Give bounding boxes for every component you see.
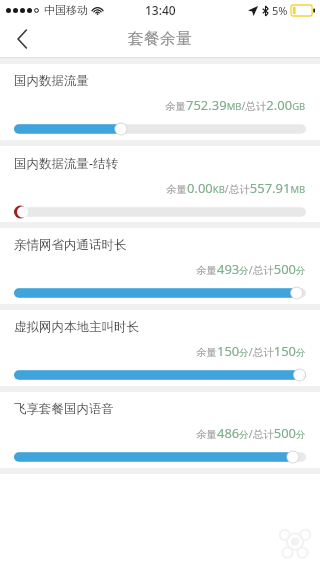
button[interactable]: 虚拟网内本地主叫时长	[0, 310, 320, 386]
button[interactable]: 亲情网省内通话时长	[0, 228, 320, 304]
staticText: 余量493分/总计500分	[196, 260, 306, 278]
staticText: 虚拟网内本地主叫时长	[14, 319, 139, 335]
staticText: 国内数据流量-结转	[14, 155, 119, 172]
staticText: 余量752.39MB/总计2.00GB	[165, 96, 306, 114]
staticText: 套餐余量	[128, 29, 192, 49]
staticText: 余量150分/总计150分	[196, 342, 306, 360]
button[interactable]: 国内数据流量-结转	[0, 146, 320, 222]
staticText: 13:40	[145, 2, 176, 18]
staticText: 亲情网省内通话时长	[14, 237, 127, 253]
staticText: 余量486分/总计500分	[196, 424, 306, 442]
staticText: 余量0.00KB/总计557.91MB	[166, 179, 306, 197]
staticText: 中国移动	[44, 3, 88, 17]
staticText: 飞享套餐国内语音	[14, 401, 114, 417]
button[interactable]: 国内数据流量	[0, 64, 320, 140]
button[interactable]: 返回	[0, 20, 44, 58]
button[interactable]: 飞享套餐国内语音	[0, 392, 320, 468]
staticText: 5%	[272, 3, 288, 18]
staticText: 国内数据流量	[14, 73, 89, 89]
